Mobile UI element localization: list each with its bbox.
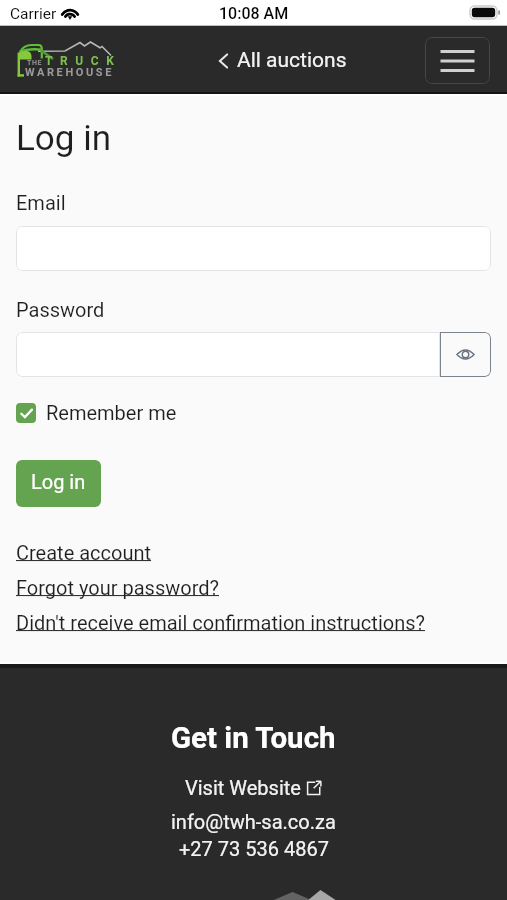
- button[interactable]: Open menu: [425, 37, 490, 84]
- button[interactable]: Log in: [16, 460, 101, 507]
- button[interactable]: Forgot your password?: [16, 576, 219, 599]
- staticText: All auctions: [237, 48, 347, 73]
- staticText: Visit Website: [185, 776, 301, 799]
- button[interactable]: Password field: [16, 332, 440, 377]
- staticText: Log in: [16, 118, 111, 159]
- staticText: THE: [27, 59, 43, 67]
- button[interactable]: Didn't receive email confirmation instru…: [16, 611, 425, 634]
- staticText: WAREHOUSE: [25, 66, 114, 79]
- staticText: 10:08 AM: [219, 4, 289, 23]
- button[interactable]: All auctions: [209, 40, 355, 81]
- button[interactable]: Email field: [16, 226, 491, 271]
- button[interactable]: Create account: [16, 541, 152, 564]
- staticText: Carrier: [10, 5, 57, 23]
- staticText: Remember me: [46, 401, 177, 424]
- button[interactable]: Visit Website: [185, 776, 322, 799]
- staticText: Log in: [31, 470, 86, 493]
- button[interactable]: Remember me: [16, 401, 177, 424]
- button[interactable]: +27 73 536 4867: [179, 837, 329, 860]
- staticText: TRUCK: [45, 54, 122, 68]
- button[interactable]: Show password: [440, 332, 491, 377]
- button[interactable]: info@twh-sa.co.za: [171, 810, 336, 833]
- staticText: Password: [16, 298, 105, 321]
- staticText: Email: [16, 191, 66, 214]
- staticText: Get in Touch: [171, 721, 336, 756]
